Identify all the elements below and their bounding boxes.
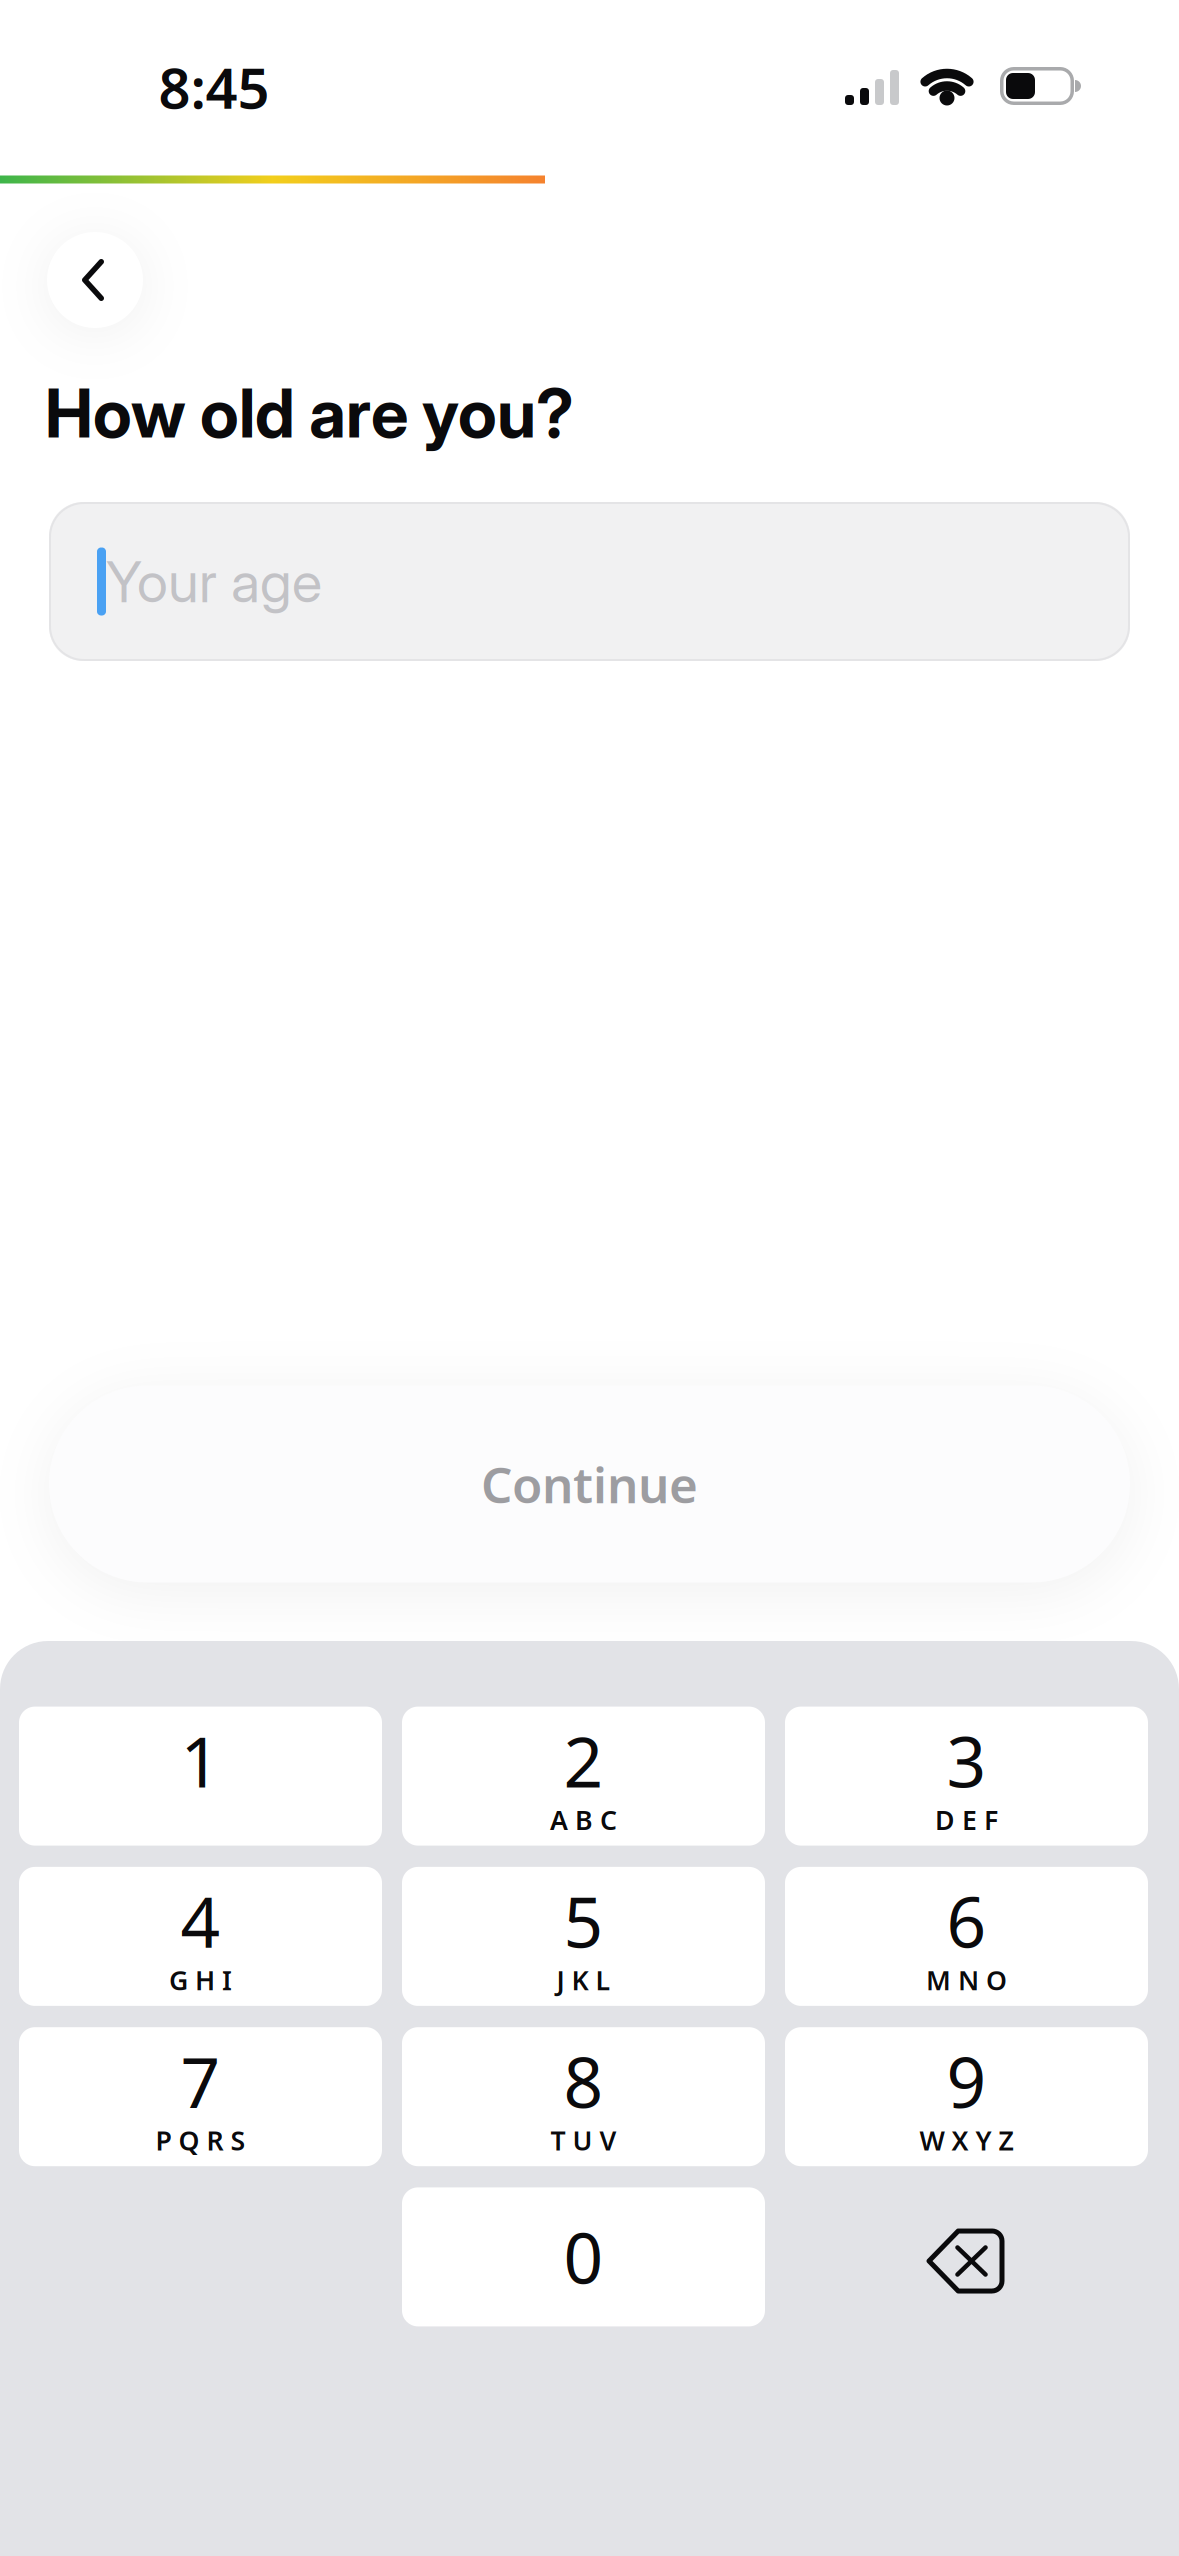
staticText: 1 bbox=[180, 1715, 220, 1807]
staticText: W X Y Z bbox=[919, 2122, 1013, 2158]
staticText: T U V bbox=[550, 2122, 616, 2158]
staticText: 4 bbox=[180, 1875, 220, 1967]
staticText: 8 bbox=[563, 2035, 603, 2127]
button[interactable]: 5 bbox=[402, 1867, 765, 2006]
button[interactable]: 6 bbox=[785, 1867, 1148, 2006]
staticText: 9 bbox=[946, 2035, 986, 2127]
button[interactable]: Your age bbox=[49, 502, 1130, 661]
staticText: 6 bbox=[946, 1875, 986, 1967]
staticText: D E F bbox=[935, 1802, 998, 1837]
button[interactable]: 0 bbox=[402, 2187, 765, 2326]
staticText: Continue bbox=[481, 1451, 698, 1517]
staticText: G H I bbox=[169, 1962, 232, 1998]
staticText: 3 bbox=[946, 1715, 986, 1807]
button[interactable]: Continue bbox=[49, 1385, 1130, 1582]
button[interactable]: Delete bbox=[784, 2191, 1147, 2330]
button[interactable]: 7 bbox=[19, 2027, 382, 2166]
button[interactable]: Back bbox=[47, 232, 143, 328]
button[interactable]: 4 bbox=[19, 1867, 382, 2006]
staticText: 5 bbox=[563, 1875, 603, 1967]
button[interactable]: 9 bbox=[785, 2027, 1148, 2166]
staticText: 7 bbox=[180, 2035, 220, 2127]
staticText: P Q R S bbox=[155, 2122, 245, 2158]
staticText: 2 bbox=[563, 1715, 603, 1807]
staticText: Your age bbox=[106, 548, 322, 616]
staticText: M N O bbox=[926, 1962, 1007, 1998]
staticText: J K L bbox=[556, 1962, 610, 1998]
staticText: How old are you? bbox=[45, 373, 574, 454]
button[interactable]: 8 bbox=[402, 2027, 765, 2166]
button[interactable]: 2 bbox=[402, 1707, 765, 1846]
button[interactable]: 3 bbox=[785, 1707, 1148, 1846]
staticText: 0 bbox=[563, 2211, 603, 2303]
staticText: A B C bbox=[550, 1802, 617, 1837]
button[interactable]: 1 bbox=[19, 1707, 382, 1846]
staticText: 8:45 bbox=[158, 50, 269, 124]
